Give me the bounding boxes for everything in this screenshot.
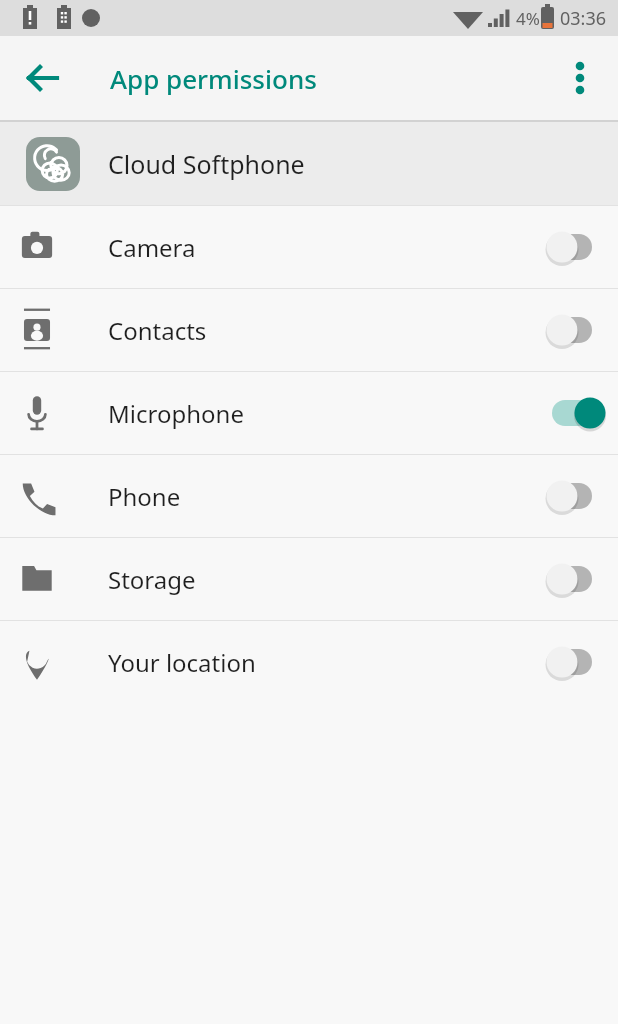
button[interactable]: Contacts off [532,289,618,371]
button[interactable]: Camera off [532,206,618,288]
staticText: Your location [108,646,256,679]
button[interactable]: Microphone on [532,372,618,454]
button[interactable]: Phone [0,455,618,537]
staticText: Microphone [108,397,244,430]
staticText: Contacts [108,314,207,347]
button[interactable]: Your location [0,621,618,703]
button[interactable]: Storage [0,538,618,620]
button[interactable]: Cloud Softphone [0,122,618,205]
staticText: 03:36 [560,6,607,31]
button[interactable]: Contacts [0,289,618,371]
staticText: Storage [108,563,196,596]
button[interactable]: More options [554,52,606,104]
staticText: Cloud Softphone [108,147,305,181]
button[interactable]: Camera [0,206,618,288]
button[interactable]: Your location off [532,621,618,703]
staticText: 4% [516,7,540,30]
staticText: App permissions [110,61,317,96]
staticText: Camera [108,231,196,264]
button[interactable]: Microphone [0,372,618,454]
button[interactable]: Phone off [532,455,618,537]
staticText: Phone [108,480,181,513]
button[interactable]: Back [14,49,72,107]
button[interactable]: Storage off [532,538,618,620]
